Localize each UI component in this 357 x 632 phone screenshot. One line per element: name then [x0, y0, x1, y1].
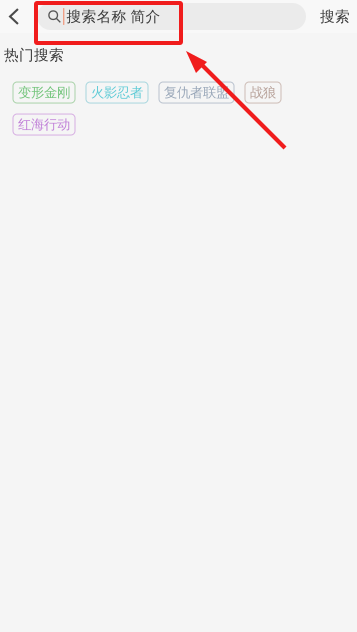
staticText: 红海行动: [18, 116, 70, 133]
staticText: 战狼: [250, 84, 276, 101]
staticText: 搜索名称 简介: [66, 7, 160, 25]
button[interactable]: Back: [9, 0, 37, 33]
staticText: 复仇者联盟: [164, 84, 229, 101]
button[interactable]: 搜索: [307, 0, 357, 33]
button[interactable]: 搜索名称 简介: [37, 3, 306, 30]
button[interactable]: 战狼: [245, 82, 281, 103]
button[interactable]: 变形金刚: [13, 82, 75, 103]
button[interactable]: 复仇者联盟: [159, 82, 234, 103]
staticText: 火影忍者: [91, 84, 143, 101]
staticText: 搜索: [320, 7, 350, 25]
staticText: 变形金刚: [18, 84, 70, 101]
staticText: 热门搜索: [4, 46, 64, 64]
button[interactable]: 红海行动: [13, 114, 75, 135]
button[interactable]: 火影忍者: [86, 82, 148, 103]
